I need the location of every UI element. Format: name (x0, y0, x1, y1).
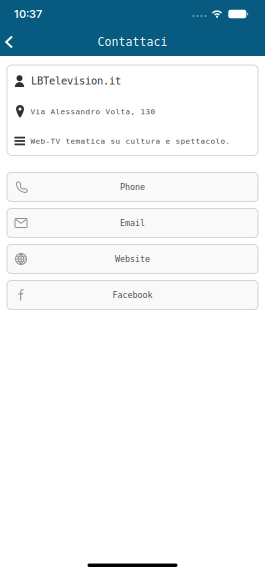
staticText: Email (120, 218, 145, 228)
button[interactable]: Website (7, 244, 258, 273)
staticText: Web-TV tematica su cultura e spettacolo. (30, 137, 230, 145)
staticText: LBTelevision.it (31, 75, 121, 87)
staticText: Website (115, 254, 150, 264)
button[interactable]: Facebook (7, 280, 258, 309)
staticText: Via Alessandro Volta, 130 (30, 107, 155, 116)
staticText: Contattaci (97, 35, 167, 49)
staticText: 10:37 (14, 7, 42, 21)
staticText: Facebook (112, 290, 152, 300)
button[interactable]: Phone (7, 172, 258, 201)
button[interactable]: Back (0, 35, 13, 48)
staticText: Phone (120, 182, 145, 192)
button[interactable]: Email (7, 208, 258, 237)
